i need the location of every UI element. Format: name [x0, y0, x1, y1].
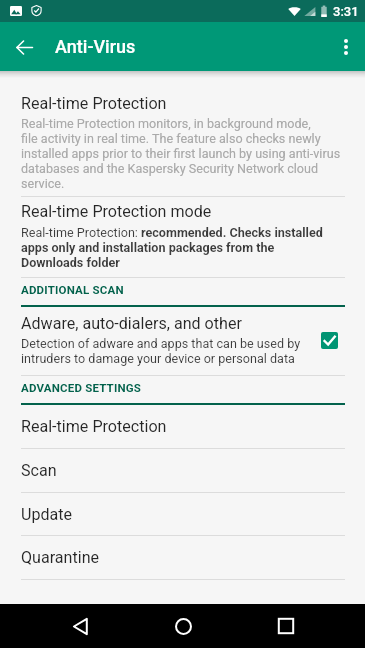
staticText: 3:31 [333, 4, 359, 19]
staticText: Real-time Protection monitors, in backgr… [21, 116, 341, 191]
staticText: ADVANCED SETTINGS [21, 381, 142, 394]
staticText: Real-time Protection [21, 417, 167, 436]
staticText: Real-time Protection: recommended. Check… [21, 225, 323, 270]
button[interactable]: Quarantine [0, 536, 365, 579]
button[interactable]: Update [0, 493, 365, 536]
staticText: Adware, auto-dialers, and other [21, 314, 242, 333]
staticText: Real-time Protection mode [21, 202, 212, 221]
button[interactable]: Real-time Protection mode [0, 200, 365, 276]
staticText: Detection of adware and apps that can be… [21, 336, 301, 366]
button[interactable]: Recent apps [264, 604, 308, 648]
button[interactable]: Back [58, 604, 102, 648]
staticText: Update [21, 505, 73, 524]
button[interactable]: Real-time Protection [0, 92, 365, 197]
button[interactable]: Back [0, 23, 48, 71]
staticText: Quarantine [21, 548, 100, 567]
button[interactable]: Adware detection enabled [321, 332, 338, 349]
staticText: ADDITIONAL SCAN [21, 283, 124, 296]
button[interactable]: Home [161, 604, 205, 648]
staticText: Real-time Protection [21, 94, 167, 113]
button[interactable]: Real-time Protection [0, 405, 365, 448]
staticText: Anti-Virus [55, 36, 136, 57]
button[interactable]: More options [322, 23, 365, 71]
staticText: Scan [21, 461, 57, 480]
button[interactable]: Scan [0, 449, 365, 492]
button[interactable]: Adware, auto-dialers, and other [0, 311, 365, 372]
